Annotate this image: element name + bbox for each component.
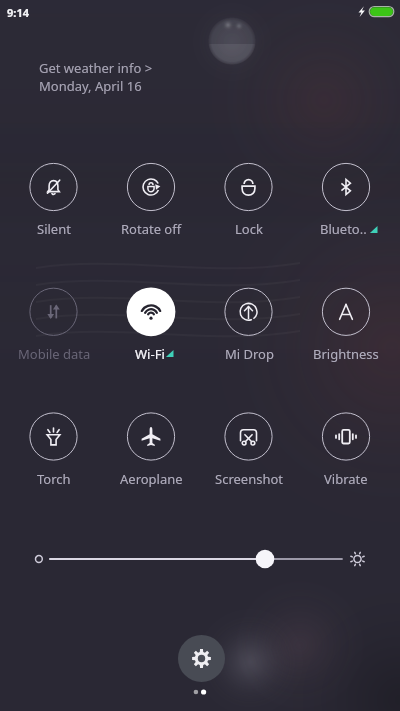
button[interactable]: Torch bbox=[8, 407, 100, 490]
staticText: Silent bbox=[37, 220, 71, 238]
button[interactable]: Brightness bbox=[300, 282, 392, 365]
staticText: 9:14 bbox=[7, 5, 29, 20]
button[interactable]: Lock bbox=[203, 157, 295, 240]
button[interactable]: Blueto.. bbox=[300, 157, 392, 240]
button[interactable]: Mi Drop bbox=[203, 282, 295, 365]
staticText: Blueto.. bbox=[320, 220, 367, 238]
staticText: Torch bbox=[37, 470, 71, 488]
button[interactable]: Screenshot bbox=[203, 407, 295, 490]
staticText: Mi Drop bbox=[225, 345, 274, 363]
button[interactable]: Settings bbox=[178, 635, 225, 682]
button[interactable]: Aeroplane bbox=[105, 407, 197, 490]
staticText: Monday, April 16 bbox=[39, 77, 142, 95]
button[interactable]: Rotate off bbox=[105, 157, 197, 240]
staticText: Brightness bbox=[313, 345, 379, 363]
staticText: Lock bbox=[235, 220, 263, 238]
staticText: Aeroplane bbox=[120, 470, 183, 488]
button[interactable]: Wi-Fi bbox=[105, 282, 197, 365]
button[interactable]: Silent bbox=[8, 157, 100, 240]
staticText: Rotate off bbox=[121, 220, 182, 238]
button[interactable]: Mobile data bbox=[8, 282, 100, 365]
staticText: Get weather info > bbox=[39, 59, 153, 77]
staticText: Screenshot bbox=[215, 470, 284, 488]
button[interactable]: Vibrate bbox=[300, 407, 392, 490]
staticText: Mobile data bbox=[18, 345, 91, 363]
button[interactable]: Brightness slider bbox=[0, 544, 400, 574]
staticText: Vibrate bbox=[324, 470, 368, 488]
staticText: Wi-Fi bbox=[135, 345, 165, 363]
